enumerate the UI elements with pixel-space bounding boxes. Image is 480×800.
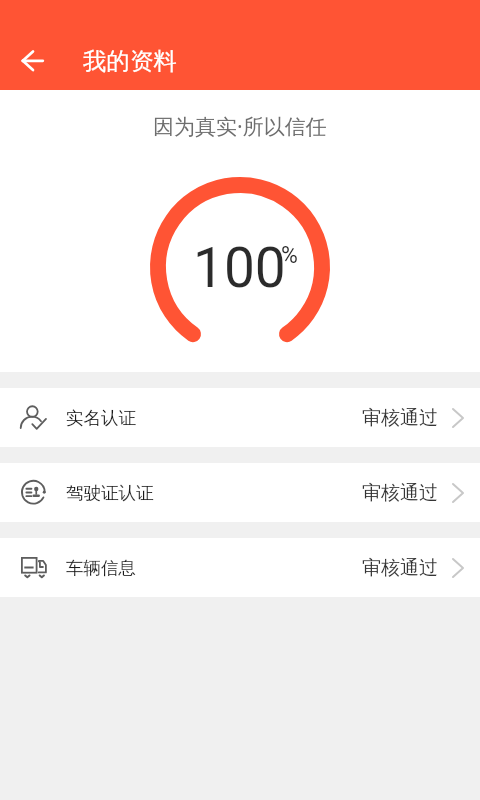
button[interactable]: Back: [8, 36, 56, 84]
staticText: 审核通过: [362, 556, 438, 580]
staticText: 车辆信息: [66, 557, 136, 579]
staticText: 审核通过: [362, 406, 438, 430]
staticText: 审核通过: [362, 481, 438, 505]
button[interactable]: 车辆信息: [0, 538, 480, 597]
staticText: 因为真实·所以信任: [153, 112, 327, 141]
button[interactable]: 驾驶证认证: [0, 463, 480, 522]
staticText: 100: [193, 236, 286, 300]
staticText: 实名认证: [66, 407, 136, 429]
staticText: %: [281, 242, 298, 269]
staticText: 驾驶证认证: [66, 482, 154, 504]
button[interactable]: 实名认证: [0, 388, 480, 447]
staticText: 我的资料: [83, 46, 177, 76]
